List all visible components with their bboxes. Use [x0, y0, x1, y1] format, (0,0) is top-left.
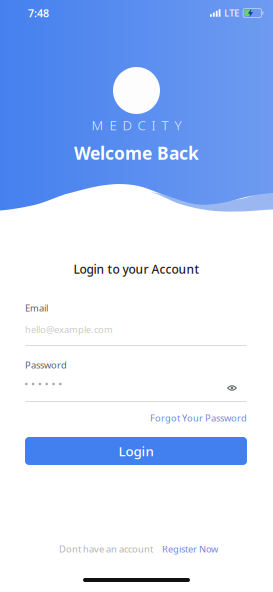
staticText: 7:48	[28, 6, 49, 20]
button[interactable]: Forgot Your Password	[25, 412, 247, 424]
staticText: Login to your Account	[73, 261, 199, 277]
staticText: Register Now	[162, 543, 218, 555]
staticText: Email	[25, 302, 48, 314]
staticText: Login	[118, 442, 153, 460]
staticText: Password	[25, 359, 67, 371]
button[interactable]: Show password	[221, 379, 243, 397]
button[interactable]: Login	[25, 437, 247, 465]
staticText: hello@example.com	[25, 323, 113, 336]
button[interactable]: Register Now	[162, 543, 218, 555]
staticText: LTE	[224, 7, 239, 19]
staticText: Dont have an account	[59, 543, 153, 555]
staticText: M E D C I T Y	[91, 116, 181, 134]
staticText: Forgot Your Password	[150, 412, 247, 424]
staticText: Welcome Back	[74, 141, 199, 164]
